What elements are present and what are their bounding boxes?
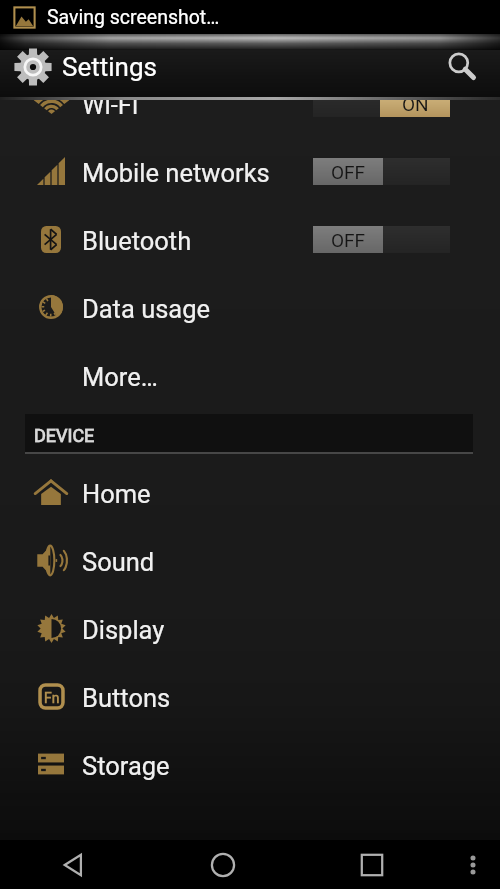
staticText: OFF — [331, 161, 366, 183]
staticText: Display — [82, 615, 165, 645]
button[interactable]: Sound — [0, 526, 500, 594]
staticText: DEVICE — [34, 425, 95, 446]
staticText: More… — [82, 362, 158, 392]
button[interactable]: More options — [446, 840, 500, 889]
staticText: Buttons — [82, 683, 171, 713]
staticText: Saving screenshot… — [47, 6, 220, 29]
button[interactable]: Display — [0, 594, 500, 662]
staticText: Bluetooth — [82, 226, 192, 256]
staticText: Home — [82, 479, 151, 509]
staticText: Sound — [82, 547, 155, 577]
button[interactable]: Wi-Fi — [0, 100, 500, 137]
button[interactable]: Switch off — [313, 226, 450, 253]
button[interactable]: Storage — [0, 730, 500, 798]
button[interactable]: Home — [0, 458, 500, 526]
staticText: ON — [402, 100, 429, 115]
staticText: Mobile networks — [82, 158, 270, 188]
button[interactable]: Search — [434, 39, 490, 95]
button[interactable]: Back — [0, 840, 148, 889]
button[interactable]: More… — [0, 341, 500, 409]
button[interactable]: Recents — [297, 840, 446, 889]
staticText: Data usage — [82, 294, 211, 324]
button[interactable]: Switch off — [313, 158, 450, 185]
staticText: Storage — [82, 751, 170, 781]
button[interactable]: Fn — [0, 662, 500, 730]
staticText: Fn — [44, 690, 60, 706]
button[interactable]: Bluetooth — [0, 205, 500, 273]
staticText: Wi-Fi — [82, 100, 139, 120]
button[interactable]: Mobile networks — [0, 137, 500, 205]
button[interactable]: Data usage — [0, 273, 500, 341]
button[interactable]: Switch on — [313, 100, 450, 117]
staticText: Settings — [62, 52, 157, 82]
button[interactable]: Home — [148, 840, 297, 889]
staticText: OFF — [331, 229, 366, 251]
